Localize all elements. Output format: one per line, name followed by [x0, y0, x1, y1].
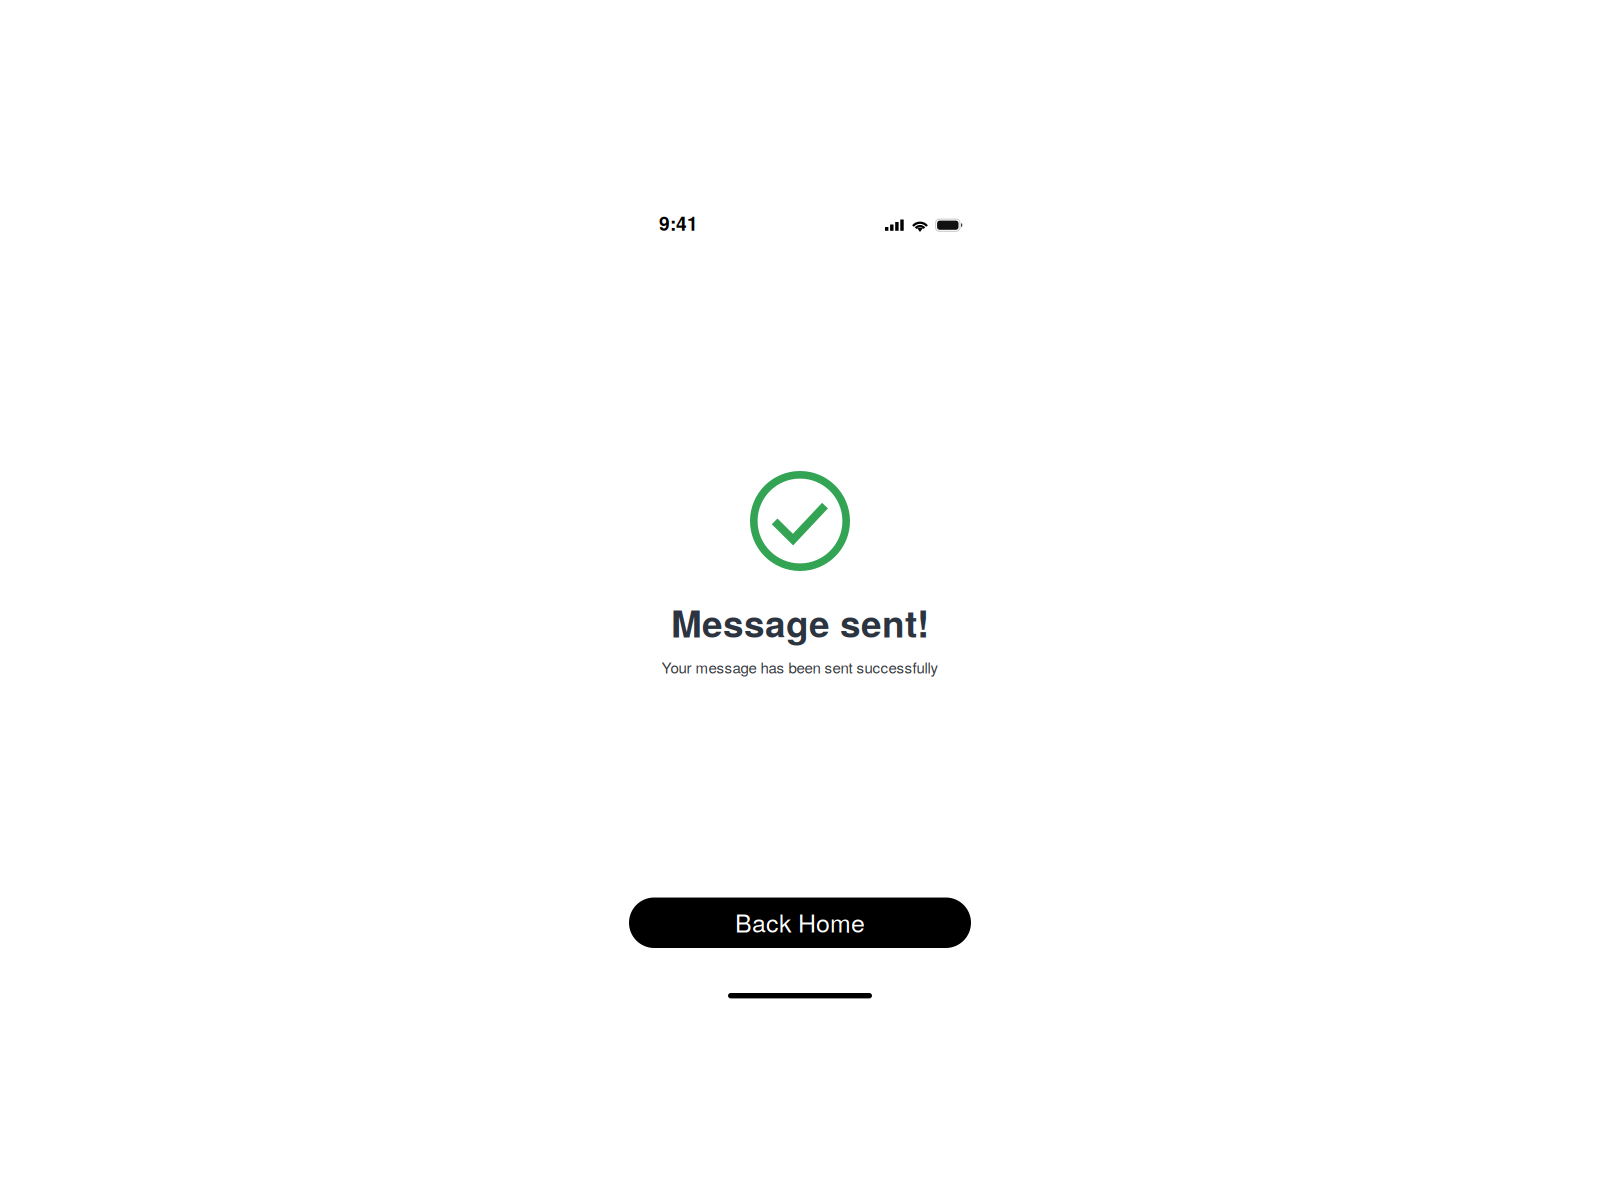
staticText: Your message has been sent successfully [661, 656, 938, 678]
staticText: Message sent! [671, 596, 929, 649]
staticText: 9:41 [659, 209, 698, 237]
staticText: Back Home [735, 904, 865, 940]
button[interactable]: Back Home [629, 897, 971, 948]
